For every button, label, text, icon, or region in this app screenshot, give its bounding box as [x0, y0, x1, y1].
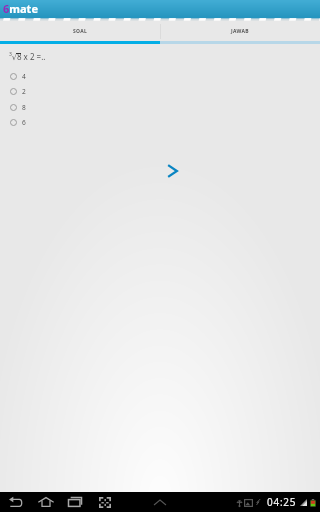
button[interactable]: SOAL	[0, 21, 160, 44]
button[interactable]: Home	[38, 494, 54, 510]
button[interactable]: JAWAB	[160, 21, 320, 44]
staticText: 2	[22, 87, 26, 96]
button[interactable]: Recent apps	[67, 494, 83, 510]
staticText: SOAL	[73, 28, 88, 35]
staticText: 3√8 x 2 =..	[9, 51, 46, 63]
button[interactable]: 4	[0, 69, 320, 84]
staticText: 6	[22, 118, 26, 127]
staticText: 4	[22, 72, 26, 81]
button[interactable]: Expand	[152, 494, 168, 510]
staticText: 04:25	[267, 495, 297, 509]
button[interactable]: Next question	[162, 161, 182, 181]
button[interactable]: Screenshot	[97, 494, 113, 510]
button[interactable]: Back	[7, 494, 23, 510]
staticText: 8	[22, 103, 26, 112]
button[interactable]: 8	[0, 100, 320, 115]
other: Signal	[299, 498, 308, 507]
other: GPS	[235, 498, 244, 507]
other: Battery	[308, 498, 317, 507]
other: Screenshot saved	[243, 497, 254, 508]
staticText: 6mate	[3, 1, 38, 16]
button[interactable]: 6	[0, 115, 320, 130]
button[interactable]: 2	[0, 84, 320, 99]
staticText: JAWAB	[231, 28, 249, 35]
other: USB	[254, 498, 262, 506]
